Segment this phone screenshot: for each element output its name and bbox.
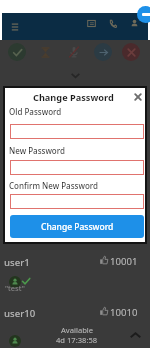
staticText: Change Password bbox=[41, 221, 114, 233]
button[interactable]: Menu bbox=[8, 20, 22, 34]
button[interactable]: user1 bbox=[0, 246, 150, 297]
button[interactable]: Contacts bbox=[87, 19, 96, 28]
button[interactable]: Available bbox=[45, 325, 109, 345]
button[interactable]: Profile bbox=[130, 19, 139, 28]
button[interactable]: Transfer bbox=[94, 43, 112, 61]
button[interactable]: Mute bbox=[65, 43, 83, 61]
button[interactable]: Answer bbox=[8, 43, 26, 61]
button[interactable]: End call bbox=[122, 43, 140, 61]
staticText: Confirm New Password bbox=[9, 180, 98, 191]
button[interactable]: Expand bbox=[70, 72, 81, 79]
staticText: 4d 17:38:58 bbox=[56, 335, 98, 345]
button[interactable]: Hold bbox=[36, 43, 54, 61]
staticText: 10010 bbox=[110, 306, 138, 319]
button[interactable]: user10 bbox=[0, 297, 150, 348]
button[interactable]: Collapse bbox=[129, 331, 142, 340]
staticText: Available bbox=[61, 325, 94, 335]
button[interactable]: Call bbox=[108, 19, 117, 28]
button[interactable]: Minimize bbox=[137, 6, 150, 23]
staticText: user1 bbox=[4, 256, 30, 269]
staticText: "test" bbox=[5, 283, 25, 293]
staticText: Change Password bbox=[33, 91, 114, 104]
staticText: Old Password bbox=[9, 106, 62, 117]
staticText: user10 bbox=[4, 307, 36, 320]
staticText: 10001 bbox=[110, 255, 138, 268]
staticText: New Password bbox=[9, 145, 65, 156]
button[interactable]: Change Password bbox=[10, 215, 144, 238]
button[interactable]: Close bbox=[133, 92, 143, 102]
